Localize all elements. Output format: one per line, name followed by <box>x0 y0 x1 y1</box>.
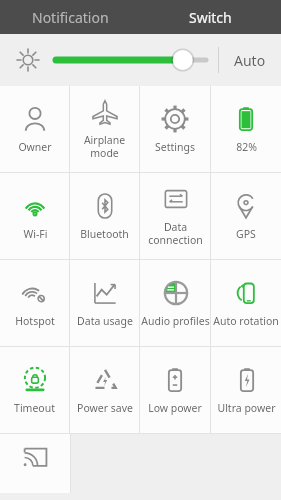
staticText: Power save <box>77 401 133 415</box>
button[interactable]: Settings <box>140 86 210 172</box>
button[interactable]: Wi-Fi <box>0 173 69 259</box>
staticText: Timeout <box>14 401 55 415</box>
staticText: Owner <box>18 140 52 154</box>
button[interactable]: Owner <box>0 86 69 172</box>
button[interactable]: Data usage <box>70 260 139 346</box>
button[interactable]: Low power <box>140 347 210 433</box>
button[interactable]: 82% <box>211 86 281 172</box>
staticText: Ultra power <box>217 401 276 415</box>
button[interactable]: Auto <box>219 34 281 86</box>
staticText: Low power <box>148 401 202 415</box>
button[interactable]: Ultra power <box>211 347 281 433</box>
button[interactable]: Bluetooth <box>70 173 139 259</box>
staticText: Airplane mode <box>70 133 139 160</box>
staticText: Data connection <box>148 220 203 247</box>
staticText: Settings <box>155 140 195 154</box>
staticText: Bluetooth <box>80 227 129 241</box>
button[interactable]: Brightness <box>56 34 218 86</box>
staticText: Switch <box>189 8 232 27</box>
button[interactable]: Screen cast <box>0 434 70 493</box>
staticText: Audio profiles <box>141 314 210 328</box>
button[interactable]: Airplane mode <box>70 86 139 172</box>
button[interactable]: Auto rotation <box>211 260 281 346</box>
button[interactable]: Timeout <box>0 347 69 433</box>
button[interactable]: Notification <box>0 0 140 34</box>
staticText: Hotspot <box>15 314 55 328</box>
staticText: Auto <box>234 51 266 70</box>
button[interactable]: Hotspot <box>0 260 69 346</box>
button[interactable]: GPS <box>211 173 281 259</box>
staticText: GPS <box>236 227 256 241</box>
staticText: Auto rotation <box>213 314 279 328</box>
button[interactable]: Audio profiles <box>140 260 210 346</box>
staticText: Notification <box>32 8 109 27</box>
staticText: Wi-Fi <box>23 227 48 241</box>
staticText: 82% <box>236 140 257 154</box>
button[interactable]: Power save <box>70 347 139 433</box>
button[interactable]: Data connection <box>140 173 210 259</box>
button[interactable]: Switch <box>140 0 281 34</box>
staticText: Data usage <box>77 314 133 328</box>
